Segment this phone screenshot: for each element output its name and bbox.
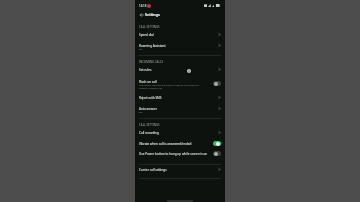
button[interactable]: Reject with SMS <box>135 93 225 103</box>
button[interactable]: Toggle Vibrate when call is answered/end… <box>213 141 221 146</box>
button[interactable]: Auto answer <box>135 104 225 115</box>
button[interactable]: Roaming Assistant <box>135 41 225 52</box>
button[interactable]: Vibrate when call is answered/ended <box>135 139 225 149</box>
staticText: Vibrate when call is answered/ended <box>139 142 192 146</box>
staticText: Use Power button to hang up while screen… <box>139 152 208 156</box>
button[interactable]: Speed dial <box>135 30 225 40</box>
staticText: The camera flash will blink upon receivi… <box>139 84 200 90</box>
button[interactable]: Set rules <box>135 65 225 75</box>
staticText: Speed dial <box>139 33 154 37</box>
staticText: 14:18 <box>139 4 147 8</box>
staticText: Roaming Assistant <box>139 44 166 48</box>
staticText: CALL SETTINGS <box>139 25 160 29</box>
staticText: INCOMING CALLS <box>139 60 163 64</box>
staticText: Set rules <box>139 68 152 72</box>
button[interactable]: Flash on call <box>135 77 225 88</box>
button[interactable]: Call recording <box>135 128 225 138</box>
staticText: Carrier call settings <box>139 168 167 172</box>
button[interactable]: Toggle Flash on call <box>213 81 221 86</box>
staticText: Flash on call <box>139 80 157 84</box>
staticText: On <box>139 48 200 51</box>
staticText: Call recording <box>139 131 159 135</box>
staticText: Auto answer <box>139 107 157 111</box>
staticText: Off <box>139 111 200 114</box>
staticText: CALL SETTINGS <box>139 123 160 127</box>
button[interactable]: Back <box>137 10 146 19</box>
button[interactable]: Carrier call settings <box>135 165 225 175</box>
staticText: Reject with SMS <box>139 96 162 100</box>
staticText: Settings <box>145 12 160 17</box>
button[interactable]: Use Power button to hang up while screen… <box>135 149 225 159</box>
button[interactable]: Toggle Use Power button to hang up while… <box>213 151 221 156</box>
